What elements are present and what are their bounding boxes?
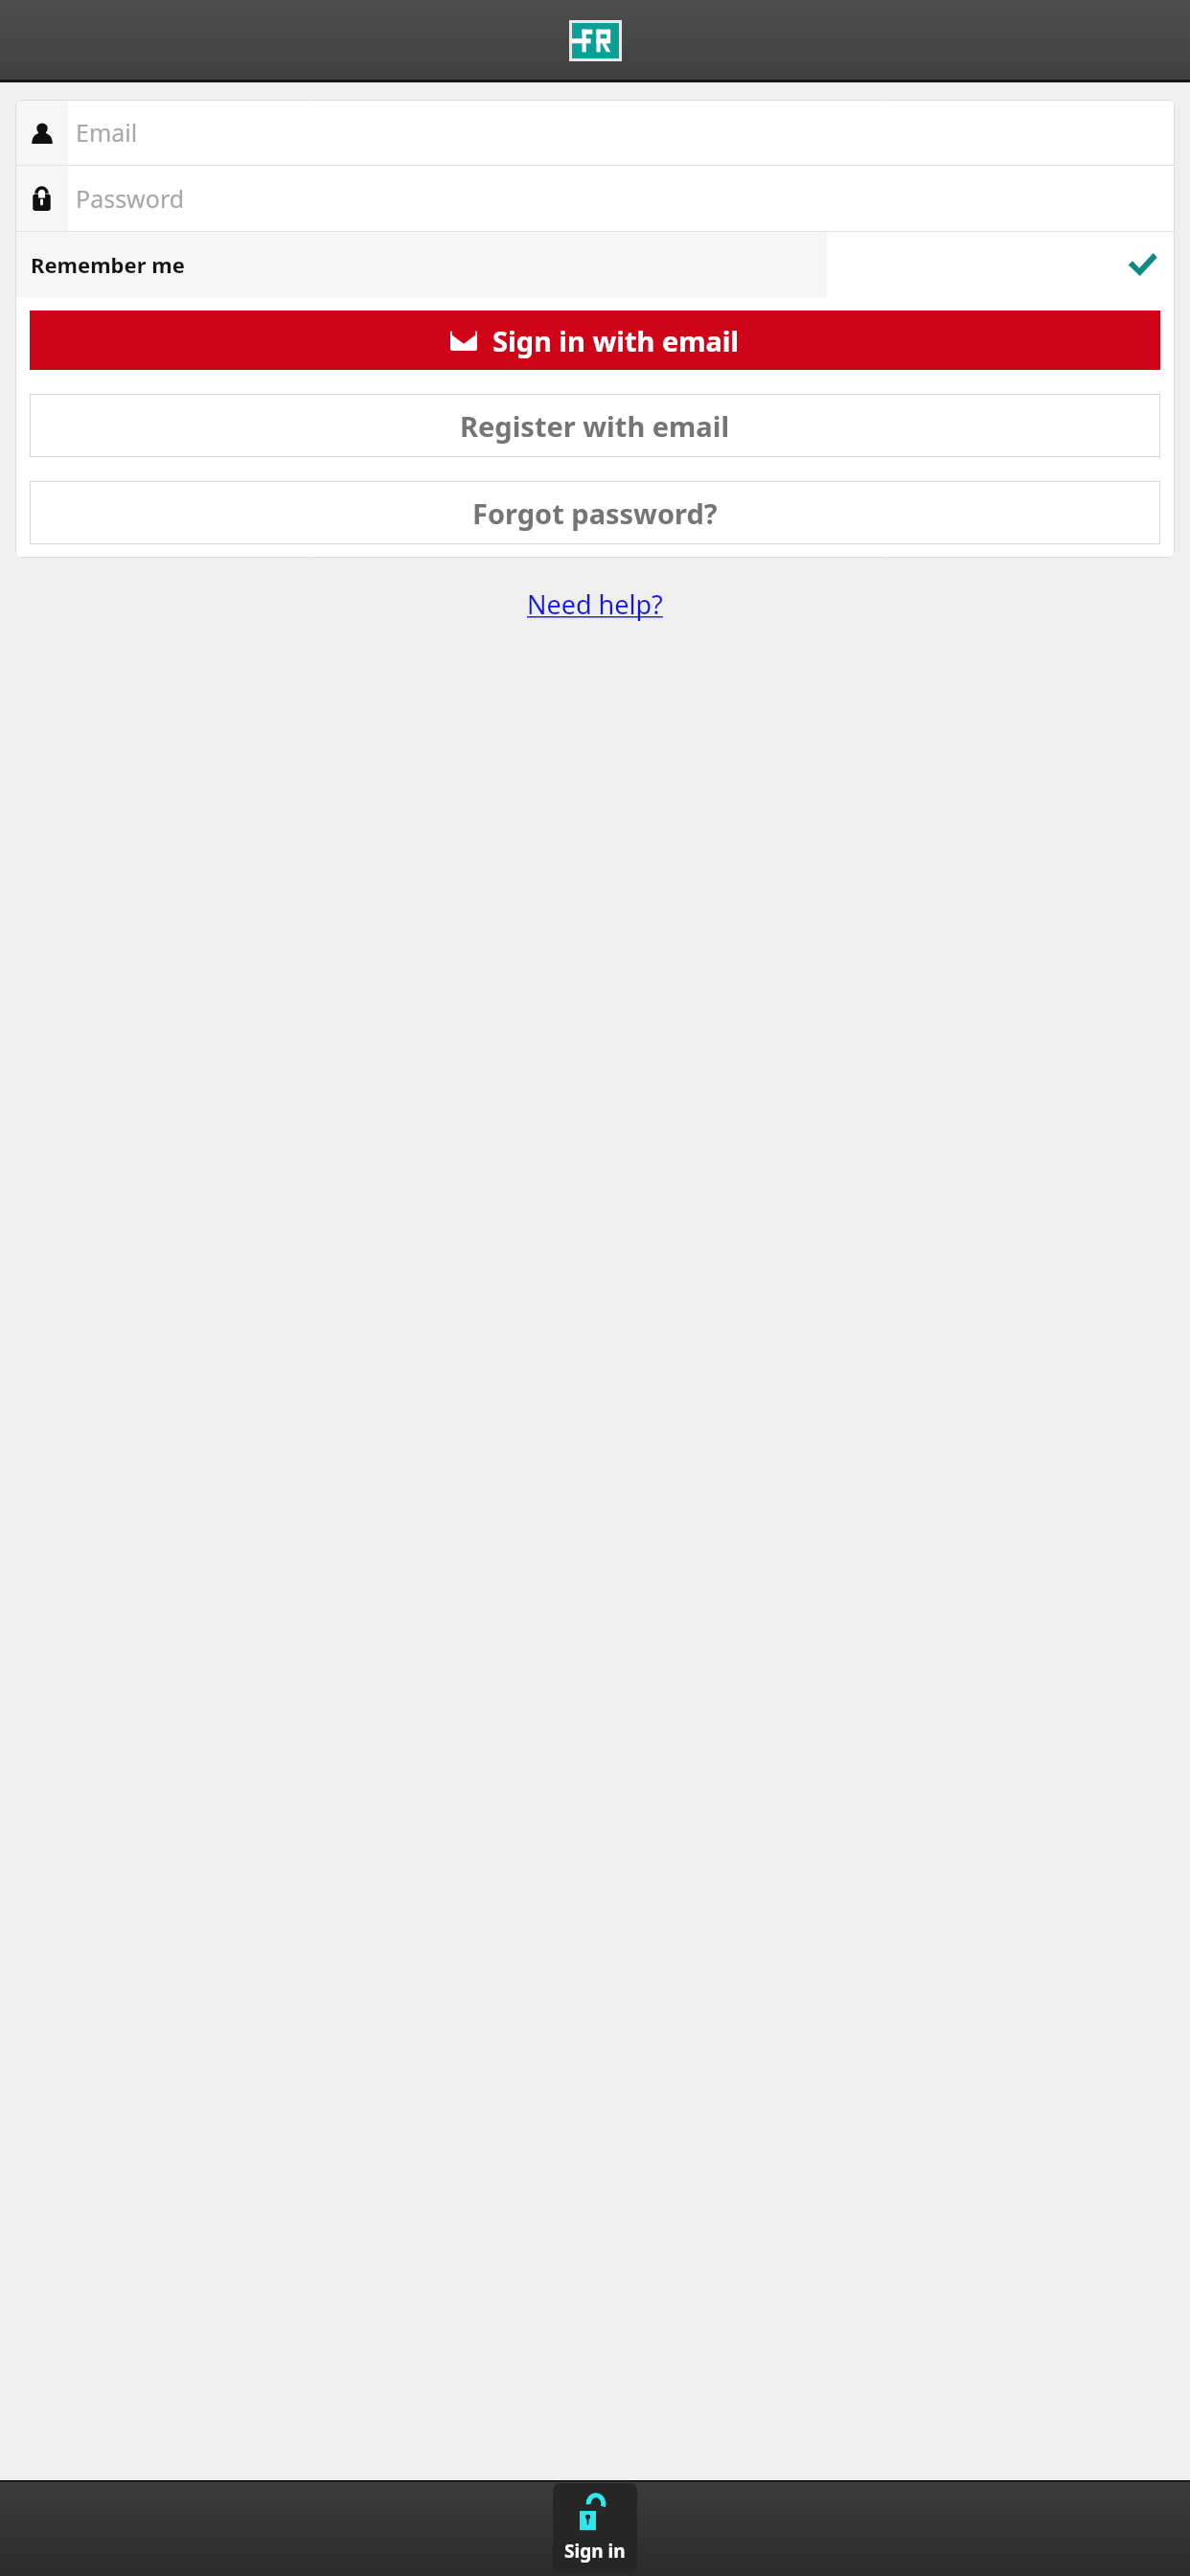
- staticText: Sign in with email: [492, 322, 740, 359]
- button[interactable]: Sign in with email: [30, 310, 1160, 370]
- button[interactable]: Remember me: [15, 232, 1175, 297]
- staticText: Register with email: [460, 407, 730, 445]
- staticText: Email: [76, 116, 138, 149]
- button[interactable]: Forgot password?: [30, 481, 1160, 544]
- button[interactable]: Password: [15, 166, 1175, 231]
- button[interactable]: Register with email: [30, 394, 1160, 457]
- staticText: Password: [76, 182, 185, 215]
- button[interactable]: Need help?: [517, 583, 673, 626]
- button[interactable]: Sign in: [553, 2483, 637, 2573]
- staticText: Sign in: [564, 2539, 626, 2564]
- staticText: Forgot password?: [472, 494, 718, 532]
- staticText: Need help?: [527, 586, 663, 622]
- button[interactable]: Email: [15, 100, 1175, 165]
- staticText: Remember me: [31, 250, 185, 279]
